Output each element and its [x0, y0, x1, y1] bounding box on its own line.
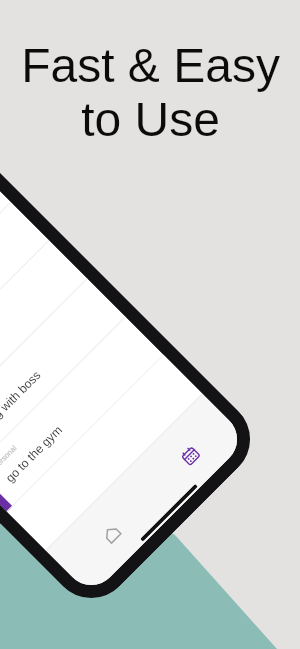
staticText: to Use — [81, 93, 220, 147]
staticText: go to the gym — [3, 423, 65, 485]
button[interactable]: shopping — [0, 164, 11, 359]
button[interactable]: personal — [0, 240, 88, 436]
staticText: meeting with boss — [0, 368, 44, 447]
staticText: Fast & Easy — [21, 39, 280, 93]
button[interactable]: Home — [93, 516, 129, 552]
button[interactable]: work — [0, 202, 50, 398]
button[interactable]: work — [0, 279, 126, 474]
staticText: personal — [0, 443, 18, 470]
button[interactable]: personal — [0, 317, 164, 512]
button[interactable]: Calendar — [171, 437, 208, 474]
